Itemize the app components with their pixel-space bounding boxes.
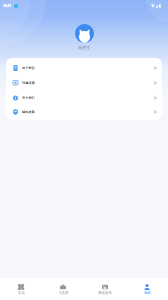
button[interactable]: 关于我们 [6,90,162,105]
staticText: 壁纸推荐 [98,291,112,295]
button[interactable]: 工具箱 [42,284,84,295]
staticText: 10:47 [3,4,12,8]
staticText: 关于我们 [22,96,35,100]
button[interactable]: 问题反馈 [6,75,162,90]
button[interactable]: 隐私政策 [6,105,162,118]
button[interactable]: 我的 [126,284,168,295]
staticText: 首页 [18,291,25,295]
button[interactable]: 首页 [0,284,42,295]
staticText: 用户协议 [22,66,35,70]
button[interactable]: Profile avatar [75,24,94,43]
staticText: 隐私政策 [22,110,35,114]
staticText: 我的 [144,291,151,295]
staticText: 工具箱 [58,291,69,295]
staticText: 品序生 [78,45,90,50]
button[interactable]: 用户协议 [6,60,162,75]
button[interactable]: 壁纸推荐 [84,284,126,295]
staticText: 问题反馈 [22,81,35,85]
